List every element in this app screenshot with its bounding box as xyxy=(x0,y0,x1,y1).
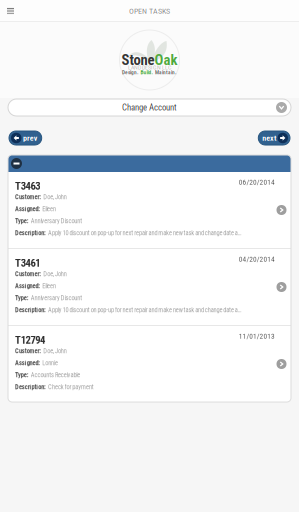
button[interactable]: Change Account xyxy=(8,99,291,116)
staticText: Doe, John xyxy=(43,347,67,355)
staticText: Type: xyxy=(15,294,29,302)
staticText: 04/20/2014 xyxy=(239,255,275,264)
staticText: Build. xyxy=(140,69,153,76)
staticText: Lonnie xyxy=(42,359,58,367)
staticText: next xyxy=(262,133,276,143)
staticText: prev xyxy=(23,133,38,143)
staticText: Oak xyxy=(154,51,177,69)
button[interactable]: prev xyxy=(9,131,42,145)
staticText: Description: xyxy=(15,383,46,391)
staticText: OPEN TASKS xyxy=(129,6,170,16)
staticText: Eileen xyxy=(42,205,56,213)
staticText: Apply 10 discount on pop-up for next rep… xyxy=(48,306,242,314)
staticText: Type: xyxy=(15,217,29,225)
button[interactable]: Open task T3461 xyxy=(276,282,286,292)
staticText: Customer: xyxy=(15,270,41,278)
staticText: Anniversary Discount xyxy=(31,294,82,302)
staticText: Apply 10 discount on pop-up for next rep… xyxy=(48,229,242,237)
staticText: Description: xyxy=(15,306,46,314)
staticText: Description: xyxy=(15,229,46,237)
staticText: T3461 xyxy=(15,257,40,269)
staticText: Doe, John xyxy=(43,193,67,201)
button[interactable]: Open task T3463 xyxy=(276,205,286,215)
staticText: 06/20/2014 xyxy=(239,178,275,187)
staticText: Eileen xyxy=(42,282,56,290)
button[interactable]: Menu xyxy=(0,0,23,22)
staticText: Assigned: xyxy=(15,359,40,367)
staticText: Check for payment xyxy=(48,383,94,391)
staticText: Doe, John xyxy=(43,270,67,278)
button[interactable]: Open task T12794 xyxy=(276,359,286,369)
staticText: T3463 xyxy=(15,180,40,192)
staticText: Maintain. xyxy=(155,69,177,76)
button[interactable]: T3461 xyxy=(8,249,291,325)
staticText: Customer: xyxy=(15,347,41,355)
staticText: Anniversary Discount xyxy=(31,217,82,225)
button[interactable]: Collapse xyxy=(8,155,22,172)
staticText: Design. xyxy=(122,69,139,76)
staticText: Stone xyxy=(121,51,154,69)
staticText: Change Account xyxy=(122,102,177,113)
staticText: T12794 xyxy=(15,334,45,346)
staticText: 11/01/2013 xyxy=(239,332,275,341)
button[interactable]: T3463 xyxy=(8,172,291,248)
staticText: Type: xyxy=(15,371,29,379)
staticText: Customer: xyxy=(15,193,41,201)
staticText: LAND DESIGN LLC xyxy=(128,64,171,71)
button[interactable]: next xyxy=(258,131,290,145)
staticText: Assigned: xyxy=(15,282,40,290)
staticText: Accounts Receivable xyxy=(31,371,80,379)
button[interactable]: T12794 xyxy=(8,326,291,402)
staticText: Assigned: xyxy=(15,205,40,213)
